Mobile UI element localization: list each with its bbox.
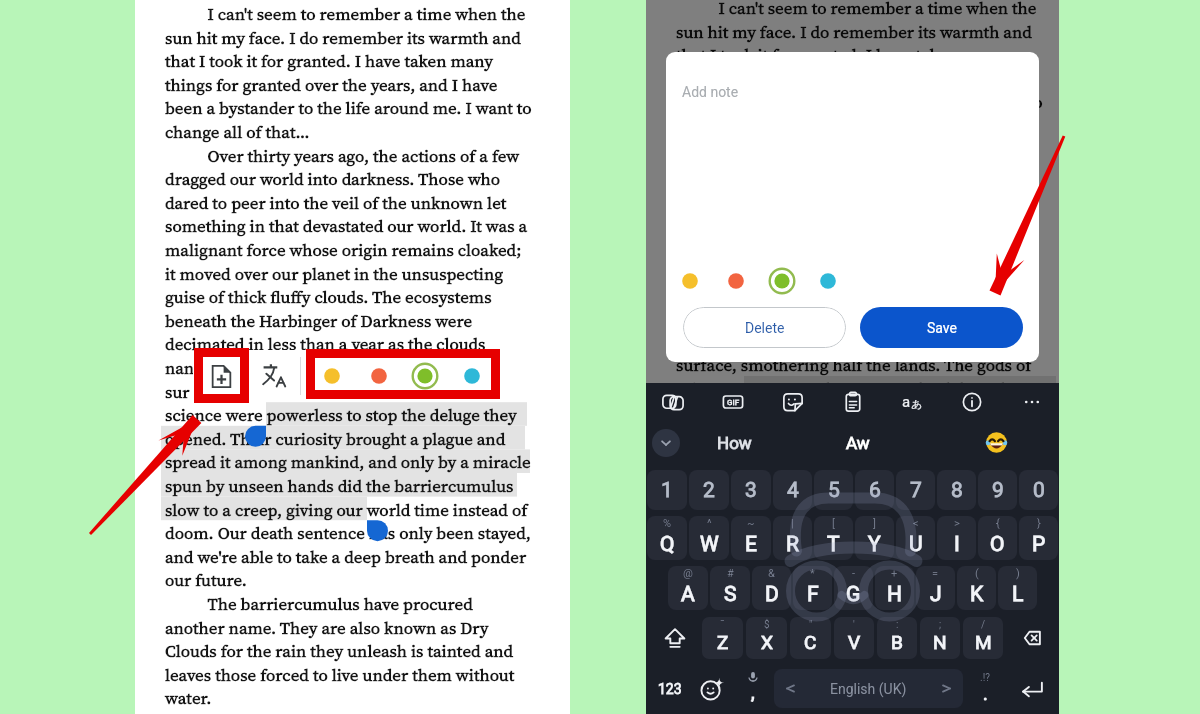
staticText: ~	[747, 517, 755, 530]
staticText: .!?	[980, 672, 990, 684]
staticText: '	[853, 619, 855, 631]
button[interactable]: Keyboard tool 6	[1017, 387, 1047, 417]
button[interactable]: ~	[731, 516, 771, 560]
button[interactable]: Comma and voice input	[732, 663, 774, 714]
button[interactable]: #	[710, 566, 750, 610]
staticText: I can't seem to remember a time when the	[165, 2, 526, 25]
button[interactable]: 123	[648, 663, 692, 714]
button[interactable]: *	[793, 566, 832, 610]
staticText: #	[727, 567, 734, 580]
button[interactable]: Aw	[807, 420, 933, 465]
button[interactable]: ¯	[702, 617, 743, 659]
button[interactable]: Highlight colour	[675, 266, 705, 296]
button[interactable]: Highlight colour	[364, 361, 394, 391]
button[interactable]: 8	[937, 470, 976, 510]
button[interactable]: Highlight colour	[410, 361, 440, 391]
button[interactable]: Enter	[1007, 663, 1057, 714]
button[interactable]: Keyboard tool 5	[957, 387, 987, 417]
button[interactable]: [	[814, 516, 853, 560]
button[interactable]: Shift	[648, 613, 702, 663]
staticText: U	[909, 532, 923, 557]
button[interactable]: Add note	[193, 350, 249, 402]
button[interactable]: Collapse suggestions	[652, 429, 680, 457]
staticText: "	[809, 619, 813, 631]
staticText: ^	[707, 517, 712, 530]
button[interactable]: Highlight colour	[317, 361, 347, 391]
button[interactable]: Emoji	[692, 663, 732, 714]
button[interactable]: Highlight colour	[457, 361, 487, 391]
button[interactable]: |	[773, 516, 812, 560]
staticText: science were powerless to stop the delug…	[676, 377, 1028, 400]
button[interactable]: Keyboard tool 2	[778, 387, 808, 417]
button[interactable]: How	[680, 420, 807, 465]
button[interactable]: Punctuation	[963, 663, 1007, 714]
staticText: Over thirty years ago, the actions of a …	[165, 144, 520, 167]
staticText: =	[932, 567, 939, 580]
staticText: A	[681, 582, 695, 607]
staticText: something in that devastated our world. …	[676, 208, 1039, 231]
button[interactable]: 9	[978, 470, 1017, 510]
button[interactable]: %	[647, 516, 687, 560]
button[interactable]: $	[746, 617, 787, 659]
button[interactable]: ^	[689, 516, 729, 560]
button[interactable]: 1	[647, 470, 687, 510]
button[interactable]: Highlight colour	[721, 266, 751, 296]
button[interactable]: 5	[814, 470, 853, 510]
staticText: :	[896, 619, 899, 631]
staticText: )	[1016, 567, 1020, 580]
button[interactable]: ]	[855, 516, 894, 560]
button[interactable]: <	[896, 516, 935, 560]
staticText: ¯	[720, 619, 725, 631]
staticText: }	[1037, 517, 1041, 530]
staticText: D	[765, 582, 779, 607]
staticText: I can't seem to remember a time when the	[676, 0, 1037, 19]
button[interactable]: 0	[1019, 470, 1058, 510]
staticText: Aw	[846, 433, 870, 453]
button[interactable]: Delete	[683, 307, 846, 348]
button[interactable]: 2	[689, 470, 729, 510]
button[interactable]: +	[875, 566, 914, 610]
button[interactable]: Backspace	[1003, 613, 1057, 663]
button[interactable]: (	[957, 566, 996, 610]
button[interactable]: Keyboard tool 1	[718, 387, 748, 417]
button[interactable]: ;	[920, 617, 960, 659]
button[interactable]: >	[937, 516, 976, 560]
button[interactable]: Laughing emoji suggestion	[933, 431, 1059, 454]
staticText: malignant force whose origin remains clo…	[676, 232, 1033, 255]
button[interactable]: English (UK)	[774, 669, 963, 708]
button[interactable]: )	[998, 566, 1037, 610]
button[interactable]: 4	[773, 470, 812, 510]
button[interactable]: 7	[896, 470, 935, 510]
button[interactable]: Highlight colour	[767, 266, 797, 296]
staticText: malignant force whose origin remains clo…	[165, 238, 522, 261]
staticText: <	[913, 517, 919, 530]
staticText: J	[930, 582, 942, 607]
button[interactable]: &	[752, 566, 791, 610]
staticText: 9	[992, 478, 1004, 503]
staticText: been a bystander to the life around me. …	[165, 96, 532, 119]
staticText: guise of thick fluffy clouds. The ecosys…	[165, 285, 492, 308]
button[interactable]: {	[978, 516, 1017, 560]
button[interactable]: '	[834, 617, 874, 659]
button[interactable]: :	[877, 617, 917, 659]
button[interactable]: 6	[855, 470, 894, 510]
button[interactable]: 3	[731, 470, 771, 510]
button[interactable]: =	[916, 566, 955, 610]
staticText: dared to peer into the veil of the unkno…	[165, 191, 507, 214]
button[interactable]: Highlight colour	[813, 266, 843, 296]
staticText: science were powerless to stop the delug…	[165, 403, 517, 426]
button[interactable]: /	[963, 617, 1003, 659]
staticText: {	[996, 517, 1000, 530]
staticText: beneath the Harbinger of Darkness were	[165, 309, 473, 332]
button[interactable]: Keyboard tool 0	[658, 387, 688, 417]
button[interactable]: @	[668, 566, 708, 610]
staticText: opened. Their curiosity brought a plague…	[165, 427, 506, 450]
button[interactable]: -	[834, 566, 873, 610]
button[interactable]: }	[1019, 516, 1058, 560]
button[interactable]: Keyboard tool 3	[838, 387, 868, 417]
button[interactable]: "	[790, 617, 831, 659]
button[interactable]: Translate	[249, 350, 300, 402]
button[interactable]: Keyboard tool 4	[897, 387, 927, 417]
button[interactable]: Save	[860, 307, 1023, 348]
